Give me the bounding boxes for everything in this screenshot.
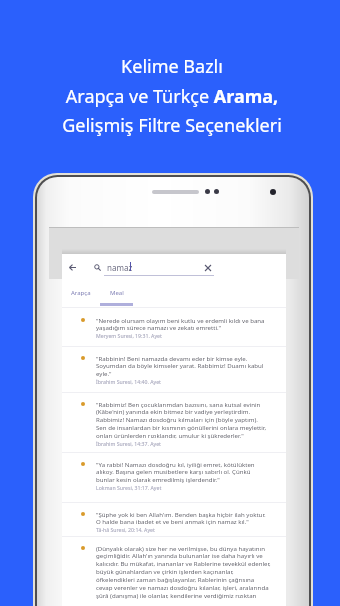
button[interactable]: "Ya rabbi! Namazı dosdoğru kıl, iyiliği … (62, 453, 286, 502)
staticText: "Rabbinin! Beni namazda devamı eder bir … (96, 354, 264, 386)
staticText: Arapça (71, 289, 91, 297)
button[interactable]: "Şüphe yok ki ben Allah'ım. Benden başka… (62, 503, 286, 536)
staticText: "Rabbimiz! Ben çocuklarımdan bazısını, s… (96, 400, 267, 448)
button[interactable]: Meal (100, 283, 133, 305)
staticText: Kelime Bazlı Arapça ve Türkçe Arama, Gel… (2, 54, 340, 137)
staticText: (Dünyalık olarak) size her ne verilmişse… (96, 544, 271, 600)
staticText: "Nerede olursam olayım beni kutlu ve erd… (96, 316, 265, 340)
button[interactable]: "Rabbinin! Beni namazda devamı eder bir … (62, 347, 286, 392)
staticText: Meal (110, 289, 124, 297)
staticText: "Şüphe yok ki ben Allah'ım. Benden başka… (96, 510, 266, 534)
button[interactable]: "Nerede olursam olayım beni kutlu ve erd… (62, 309, 286, 346)
button[interactable]: Back (62, 254, 286, 283)
other: Back (69, 264, 76, 271)
staticText: "Ya rabbi! Namazı dosdoğru kıl, iyiliği … (96, 460, 255, 492)
staticText: namaz (107, 262, 133, 273)
button[interactable]: (Dünyalık olarak) size her ne verilmişse… (62, 537, 286, 605)
other: Clear (205, 265, 211, 271)
button[interactable]: "Rabbimiz! Ben çocuklarımdan bazısını, s… (62, 393, 286, 452)
other: Search (94, 264, 101, 271)
button[interactable]: Arapça (65, 283, 98, 305)
